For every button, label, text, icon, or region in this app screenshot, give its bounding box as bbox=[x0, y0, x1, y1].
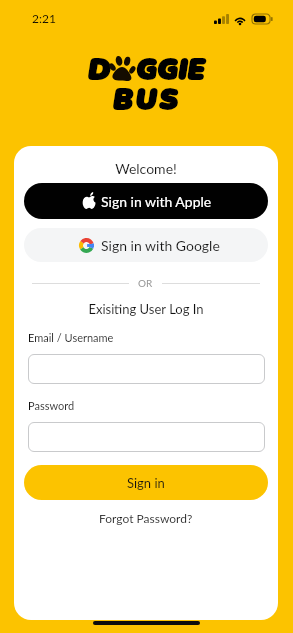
staticText: 2:21 bbox=[32, 11, 56, 25]
staticText: Sign in with Apple bbox=[101, 193, 212, 210]
staticText: OR bbox=[138, 277, 153, 289]
button[interactable]: Sign in with Apple bbox=[24, 183, 268, 219]
button[interactable]: Sign in bbox=[24, 465, 268, 500]
staticText: Sign in bbox=[127, 475, 165, 491]
staticText: Password bbox=[28, 399, 75, 412]
staticText: D bbox=[88, 51, 111, 89]
staticText: BUS bbox=[113, 81, 181, 119]
staticText: BUS bbox=[113, 81, 181, 119]
staticText: Exisiting User Log In bbox=[14, 301, 278, 317]
staticText: D bbox=[88, 51, 111, 89]
staticText: Welcome! bbox=[14, 160, 278, 177]
staticText: Email / Username bbox=[28, 331, 114, 344]
button[interactable] bbox=[28, 422, 265, 452]
staticText: GGIE bbox=[136, 51, 205, 89]
staticText: GGIE bbox=[136, 51, 205, 89]
button[interactable] bbox=[28, 354, 265, 384]
staticText: Sign in with Google bbox=[101, 237, 220, 254]
button[interactable]: Forgot Password? bbox=[99, 511, 193, 525]
button[interactable]: Sign in with Google bbox=[24, 228, 268, 262]
